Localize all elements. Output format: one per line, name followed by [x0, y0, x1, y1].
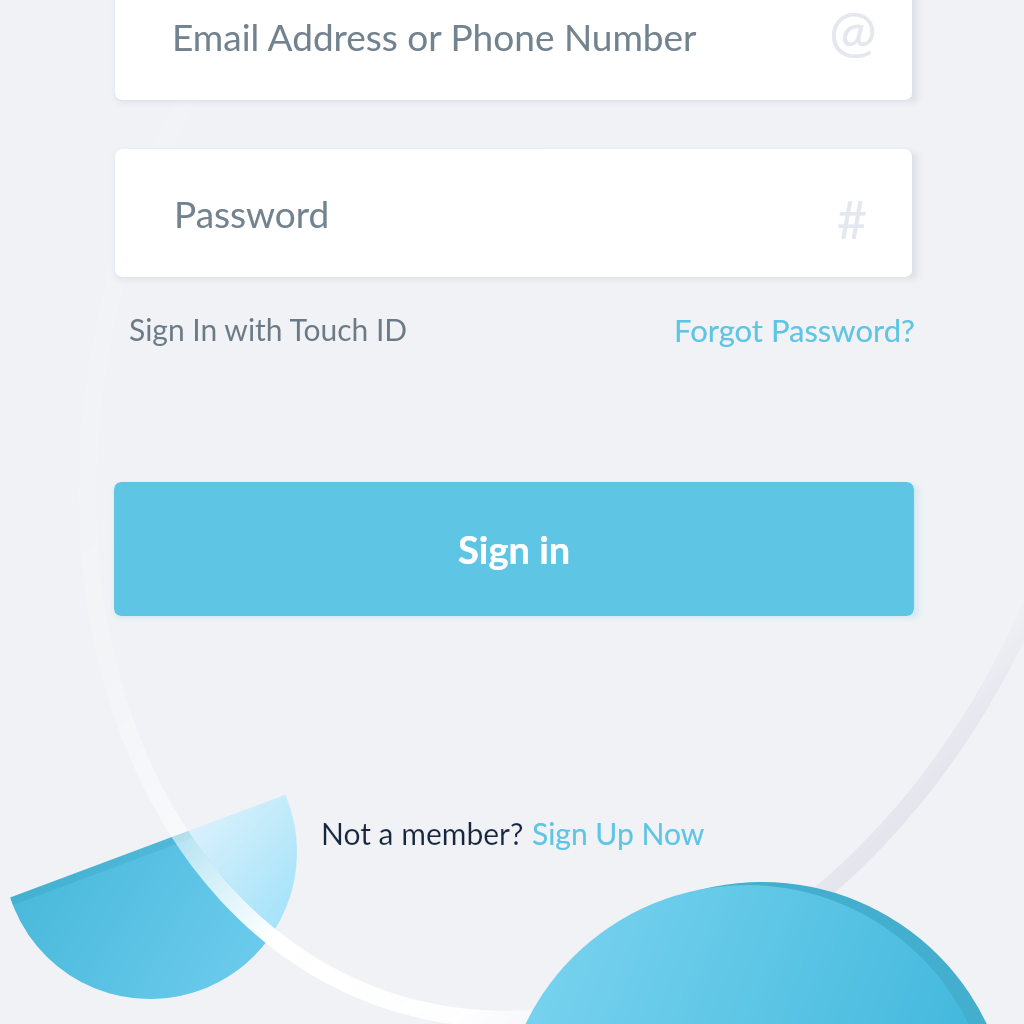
button[interactable]: Sign in	[114, 482, 914, 616]
staticText: Sign In with Touch ID	[129, 311, 408, 347]
button[interactable]: Sign In with Touch ID	[113, 303, 424, 355]
staticText: #	[837, 188, 868, 250]
staticText: Not a member?	[321, 815, 532, 851]
staticText: Email Address or Phone Number	[172, 14, 697, 58]
staticText: @	[829, 0, 877, 63]
staticText: Sign Up Now	[532, 815, 705, 851]
button[interactable]: Sign Up Now	[532, 815, 705, 851]
staticText: Password	[174, 191, 330, 235]
button[interactable]: Email Address or Phone Number	[115, 0, 912, 100]
button[interactable]: Forgot Password?	[658, 303, 931, 355]
staticText: Sign in	[458, 526, 571, 572]
button[interactable]: Password	[115, 149, 912, 277]
staticText: Forgot Password?	[674, 311, 915, 348]
